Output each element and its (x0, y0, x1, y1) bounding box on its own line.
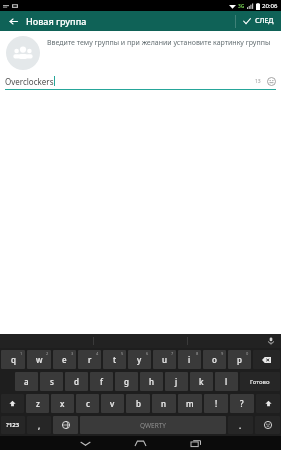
staticText: h (149, 376, 155, 387)
button[interactable]: e (53, 350, 76, 369)
staticText: , (38, 420, 41, 431)
staticText: k (199, 376, 204, 387)
staticText: ?123 (6, 421, 20, 429)
staticText: Введите тему группы и при желании устано… (47, 38, 271, 48)
staticText: 7 (171, 351, 174, 356)
staticText: 1 (20, 351, 23, 356)
staticText: Overclockers (5, 76, 54, 87)
staticText: 13 (255, 78, 261, 85)
staticText: n (161, 398, 167, 409)
staticText: 20:06 (262, 2, 278, 10)
staticText: 3 (71, 351, 74, 356)
staticText: z (36, 398, 40, 409)
staticText: j (175, 376, 178, 387)
button[interactable]: g (115, 372, 138, 391)
button[interactable]: . (228, 416, 253, 434)
button[interactable]: k (190, 372, 213, 391)
button[interactable]: Emoji (267, 77, 276, 86)
button[interactable]: Recent apps (168, 436, 223, 450)
button[interactable]: ? (230, 394, 254, 413)
button[interactable]: Shift (256, 394, 280, 413)
staticText: q (11, 354, 16, 365)
button[interactable]: h (140, 372, 163, 391)
staticText: QWERTY (140, 421, 167, 430)
button[interactable]: Shift (1, 394, 24, 413)
button[interactable]: b (126, 394, 150, 413)
button[interactable]: o (203, 350, 226, 369)
button[interactable]: j (165, 372, 188, 391)
staticText: СЛЕД (255, 16, 274, 26)
button[interactable]: m (178, 394, 202, 413)
staticText: 6 (146, 351, 149, 356)
button[interactable]: l (215, 372, 238, 391)
button[interactable]: p (228, 350, 251, 369)
staticText: . (239, 420, 242, 431)
staticText: d (74, 376, 79, 387)
staticText: 8 (196, 351, 199, 356)
staticText: f (100, 376, 103, 387)
staticText: e (62, 354, 67, 365)
staticText: x (60, 398, 65, 409)
staticText: Готово (250, 378, 270, 386)
staticText: c (86, 398, 90, 409)
button[interactable]: v (101, 394, 124, 413)
button[interactable]: r (78, 350, 101, 369)
staticText: 5 (121, 351, 124, 356)
staticText: u (162, 354, 168, 365)
button[interactable]: Home (113, 436, 168, 450)
staticText: p (237, 354, 242, 365)
staticText: Новая группа (26, 15, 87, 27)
button[interactable]: q (1, 350, 25, 369)
button[interactable]: ?123 (1, 416, 25, 434)
button[interactable]: s (40, 372, 63, 391)
button[interactable]: ! (204, 394, 228, 413)
button[interactable]: Backspace (253, 350, 280, 369)
staticText: 2 (46, 351, 49, 356)
button[interactable]: d (65, 372, 88, 391)
button[interactable]: QWERTY (80, 416, 226, 434)
button[interactable]: Voice input (188, 334, 281, 348)
staticText: t (113, 354, 117, 365)
staticText: o (212, 354, 217, 365)
button[interactable]: n (152, 394, 176, 413)
staticText: y (137, 354, 142, 365)
button[interactable]: a (15, 372, 38, 391)
button[interactable]: СЛЕД (243, 11, 274, 31)
staticText: m (186, 398, 194, 409)
staticText: 3G (238, 3, 245, 10)
button[interactable]: w (27, 350, 51, 369)
button[interactable]: y (128, 350, 151, 369)
staticText: v (110, 398, 115, 409)
button[interactable]: Overclockers (5, 73, 276, 89)
staticText: s (50, 376, 54, 387)
staticText: a (24, 376, 29, 387)
button[interactable]: c (76, 394, 99, 413)
staticText: g (124, 376, 129, 387)
staticText: 9 (221, 351, 224, 356)
button[interactable]: u (153, 350, 176, 369)
other: Voice input (267, 337, 275, 345)
button[interactable]: t (103, 350, 126, 369)
button[interactable]: z (26, 394, 49, 413)
staticText: i (188, 354, 191, 365)
button[interactable]: Готово (240, 372, 280, 391)
staticText: r (88, 354, 92, 365)
button[interactable]: , (27, 416, 51, 434)
staticText: b (136, 398, 141, 409)
staticText: w (36, 354, 43, 365)
staticText: 0 (246, 351, 249, 356)
staticText: 4 (96, 351, 99, 356)
staticText: ? (240, 398, 244, 409)
button[interactable]: Hide keyboard (58, 436, 113, 450)
staticText: l (225, 376, 228, 387)
button[interactable]: Back (0, 11, 26, 31)
button[interactable]: x (51, 394, 74, 413)
button[interactable]: Emoji keyboard (255, 416, 280, 434)
button[interactable]: f (90, 372, 113, 391)
button[interactable]: Change language (53, 416, 78, 434)
staticText: ! (215, 398, 218, 409)
button[interactable]: Set group photo (6, 36, 40, 70)
button[interactable]: i (178, 350, 201, 369)
